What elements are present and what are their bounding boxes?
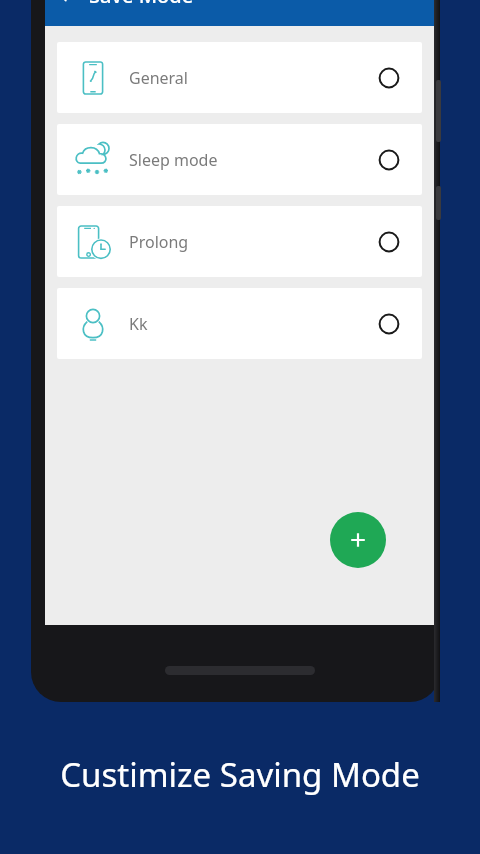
button[interactable]: Add mode — [330, 512, 386, 568]
button[interactable]: General — [57, 42, 422, 113]
button[interactable]: Prolong — [57, 206, 422, 277]
staticText: Kk — [129, 313, 148, 335]
button[interactable]: Kk — [57, 288, 422, 359]
staticText: Save Mode — [89, 0, 194, 8]
staticText: Custimize Saving Mode — [0, 752, 480, 797]
staticText: Prolong — [129, 231, 189, 253]
staticText: General — [129, 67, 188, 89]
button[interactable]: Sleep mode — [57, 124, 422, 195]
staticText: Sleep mode — [129, 149, 218, 171]
button[interactable]: Back — [45, 0, 89, 8]
